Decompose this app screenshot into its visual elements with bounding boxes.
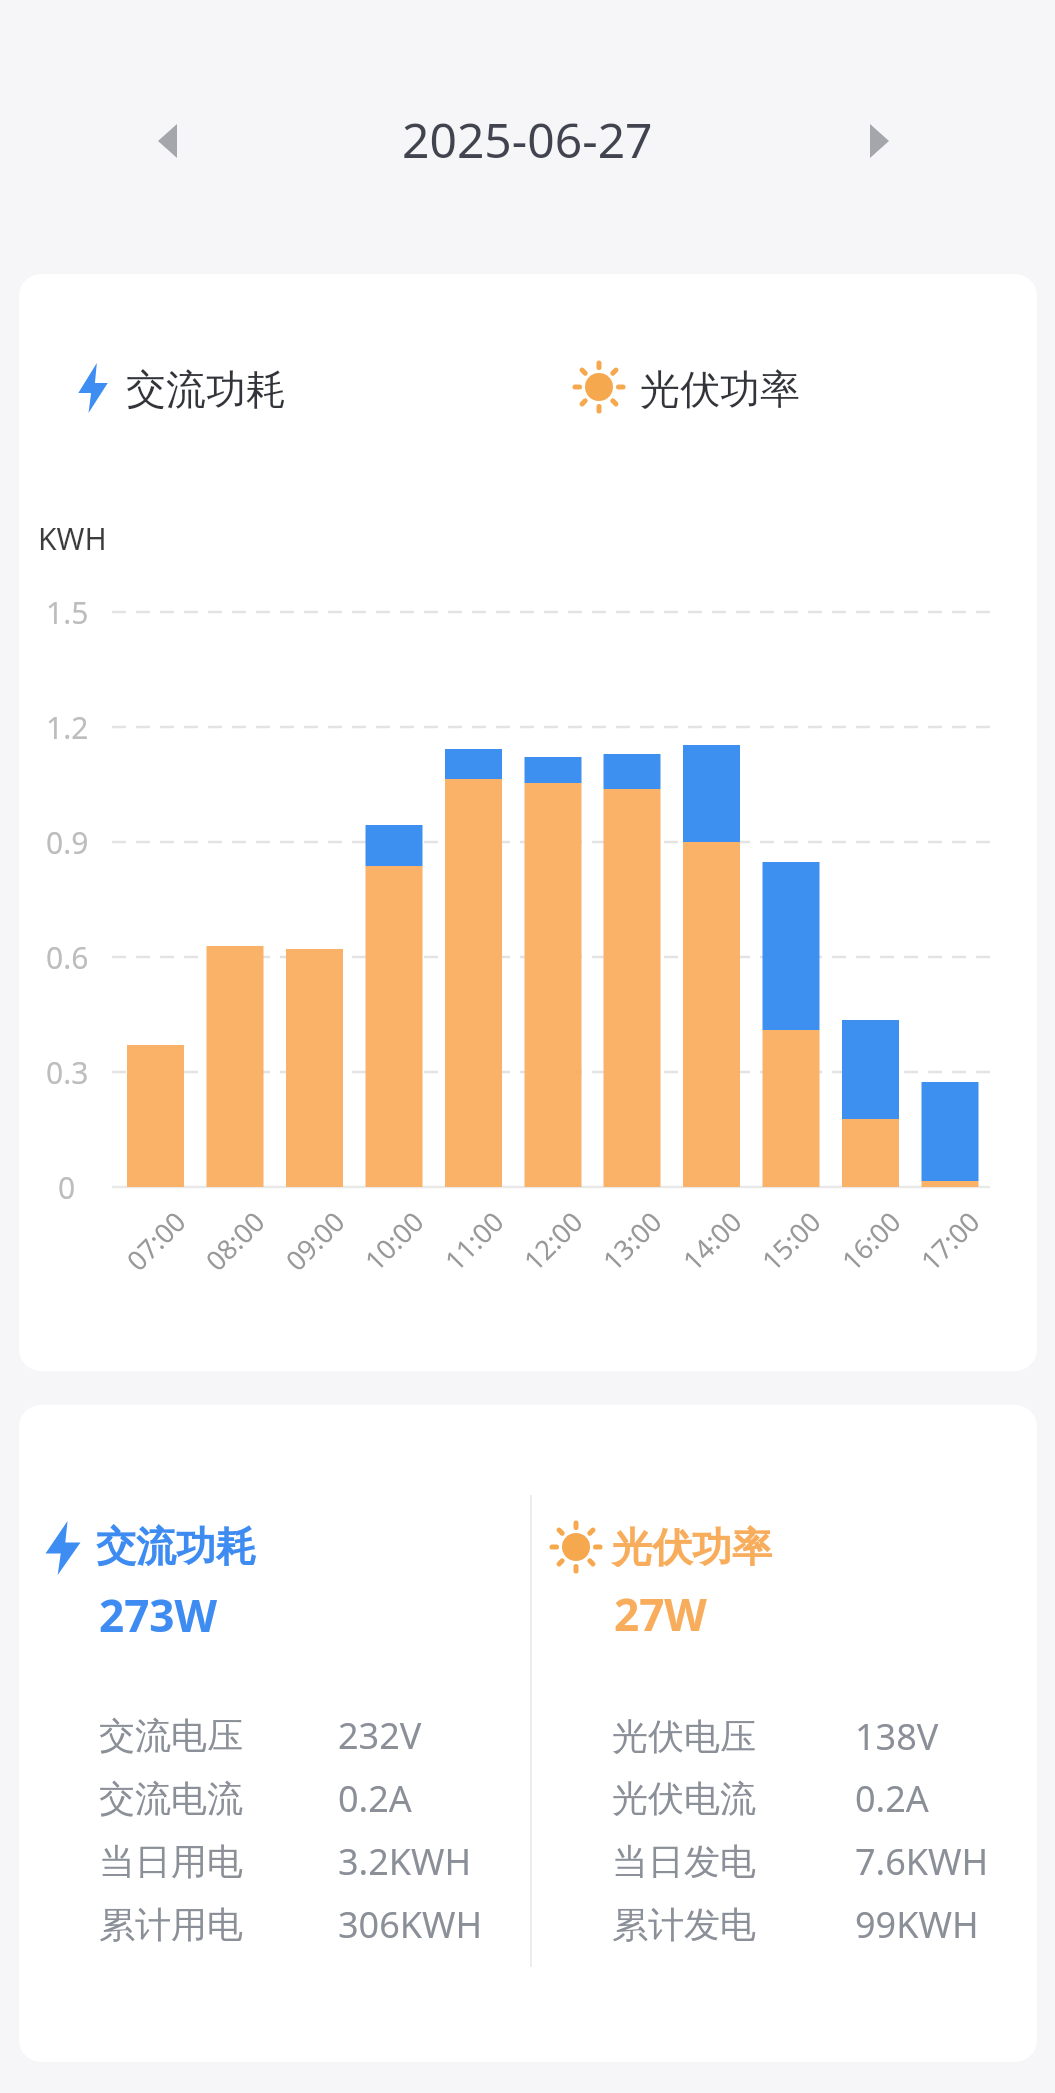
staticText: 光伏电压 [612, 1714, 756, 1759]
staticText: 累计发电 [612, 1902, 756, 1947]
staticText: 光伏功率 [640, 364, 800, 414]
staticText: 当日发电 [612, 1839, 756, 1884]
staticText: 7.6KWH [855, 1837, 989, 1886]
staticText: 当日用电 [99, 1839, 243, 1884]
staticText: 13:00 [594, 1203, 670, 1278]
staticText: 3.2KWH [338, 1837, 472, 1886]
staticText: 07:00 [118, 1203, 194, 1278]
button[interactable] [849, 111, 909, 171]
staticText: 99KWH [855, 1900, 979, 1949]
staticText: 累计用电 [99, 1902, 243, 1947]
staticText: 0.2A [338, 1774, 412, 1823]
staticText: 光伏功率 [612, 1522, 772, 1572]
staticText: 交流功耗 [126, 364, 286, 414]
staticText: 273W [99, 1585, 218, 1645]
staticText: 27W [614, 1584, 707, 1644]
staticText: KWH [38, 518, 107, 559]
staticText: 1.5 [46, 592, 89, 633]
staticText: 0.2A [855, 1774, 929, 1823]
button[interactable] [138, 111, 198, 171]
staticText: 2025-06-27 [402, 107, 653, 172]
staticText: 10:00 [356, 1203, 432, 1278]
staticText: 232V [338, 1711, 422, 1760]
staticText: 14:00 [674, 1203, 750, 1278]
staticText: 0.9 [46, 822, 89, 863]
staticText: 0 [58, 1167, 76, 1208]
staticText: 09:00 [277, 1203, 353, 1278]
staticText: 138V [855, 1712, 939, 1761]
staticText: 17:00 [912, 1203, 988, 1278]
staticText: 11:00 [436, 1203, 512, 1278]
staticText: 交流功耗 [96, 1521, 256, 1571]
staticText: 光伏电流 [612, 1776, 756, 1821]
staticText: 交流电压 [99, 1713, 243, 1758]
staticText: 0.3 [46, 1052, 89, 1093]
staticText: 16:00 [833, 1203, 909, 1278]
staticText: 08:00 [197, 1203, 273, 1278]
staticText: 15:00 [753, 1203, 829, 1278]
staticText: 1.2 [46, 707, 89, 748]
staticText: 12:00 [515, 1203, 591, 1278]
staticText: 306KWH [338, 1900, 483, 1949]
staticText: 交流电流 [99, 1776, 243, 1821]
staticText: 0.6 [46, 937, 89, 978]
